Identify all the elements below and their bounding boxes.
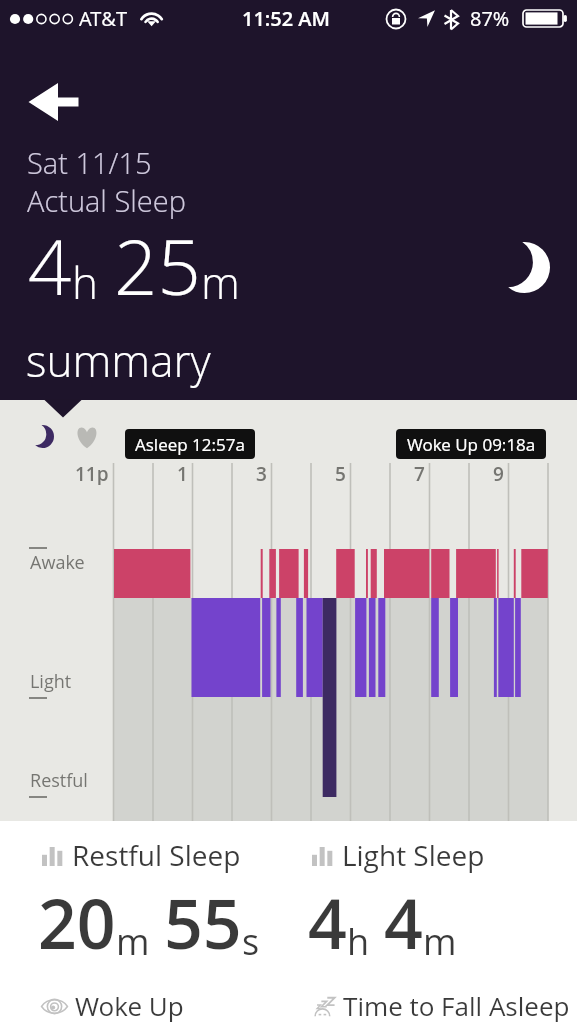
staticText: 5 xyxy=(335,461,346,485)
staticText: Light xyxy=(30,669,72,694)
staticText: Sat 11/15 xyxy=(27,143,152,182)
button[interactable]: Back xyxy=(14,70,92,134)
button[interactable]: Sleep xyxy=(31,425,54,448)
staticText: 1 xyxy=(177,461,188,485)
staticText: m xyxy=(116,917,150,966)
staticText: m xyxy=(201,252,240,312)
staticText: s xyxy=(242,917,260,966)
button[interactable]: Heart rate xyxy=(75,427,99,449)
button[interactable]: summary xyxy=(0,332,240,400)
staticText: m xyxy=(423,917,457,966)
staticText: 87% xyxy=(470,5,510,32)
staticText: Woke Up 09:18a xyxy=(407,433,536,456)
staticText: 25 xyxy=(114,214,201,317)
staticText: Time to Fall Asleep xyxy=(343,988,570,1023)
staticText: h xyxy=(347,917,370,966)
staticText: 11:52 AM xyxy=(242,5,331,32)
staticText: 4 xyxy=(308,876,347,969)
button[interactable]: Time to Fall Asleep xyxy=(310,989,570,1024)
staticText: Woke Up xyxy=(75,988,184,1023)
staticText: Light Sleep xyxy=(342,836,485,874)
staticText: 55 xyxy=(164,876,242,969)
staticText: Asleep 12:57a xyxy=(135,433,245,456)
staticText: Restful Sleep xyxy=(72,836,241,874)
staticText: 11p xyxy=(75,461,109,485)
staticText: 3 xyxy=(256,461,267,485)
staticText: Restful xyxy=(30,768,88,793)
staticText: h xyxy=(72,252,98,312)
staticText: AT&T xyxy=(79,5,127,32)
staticText: Actual Sleep xyxy=(27,181,186,220)
staticText: Awake xyxy=(30,550,85,575)
staticText: 4 xyxy=(28,214,72,317)
staticText: 20 xyxy=(38,876,116,969)
staticText: 4 xyxy=(384,876,423,969)
staticText: summary xyxy=(26,330,211,390)
staticText: 7 xyxy=(414,461,425,485)
button[interactable]: Woke Up xyxy=(41,989,184,1024)
staticText: 9 xyxy=(493,461,504,485)
